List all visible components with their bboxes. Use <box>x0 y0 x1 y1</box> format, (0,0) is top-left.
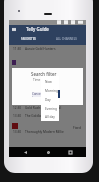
staticText: Cancel <box>32 92 41 97</box>
staticText: 13:30 <box>13 130 22 134</box>
staticText: All day <box>45 115 55 119</box>
button[interactable]: ALL CHANNELS <box>47 33 86 45</box>
button[interactable]: Evening <box>41 104 59 113</box>
button[interactable]: Morning <box>41 86 59 95</box>
staticText: Day <box>45 98 51 102</box>
staticText: FAVORITES <box>21 37 36 41</box>
staticText: Telly Guide <box>26 26 49 32</box>
staticText: Time <box>33 78 41 82</box>
button[interactable]: Time <box>33 78 41 82</box>
staticText: ALL CHANNELS <box>56 37 77 41</box>
button[interactable]: Day <box>41 95 59 104</box>
button[interactable]: Back <box>19 147 31 157</box>
staticText: Fixed <box>73 126 81 130</box>
staticText: Search filter <box>31 71 57 77</box>
button[interactable]: Home <box>42 147 54 157</box>
button[interactable]: Open navigation menu <box>9 25 18 33</box>
button[interactable]: All day <box>41 113 59 121</box>
staticText: Gold Rush: Parker's Trail <box>25 106 62 110</box>
staticText: Now <box>45 80 52 84</box>
button[interactable]: Recent apps <box>64 147 76 157</box>
button[interactable]: Fixed <box>73 126 81 130</box>
button[interactable]: 11:30 <box>9 46 86 51</box>
staticText: Thoroughly Modern Millie <box>25 130 64 134</box>
staticText: 13:30 <box>13 114 22 118</box>
button[interactable]: Cancel <box>32 92 41 97</box>
staticText: Morning <box>45 89 58 93</box>
staticText: 12:30 <box>13 106 22 110</box>
button[interactable]: 12:30 <box>9 105 86 110</box>
staticText: 11:30 <box>13 47 22 51</box>
button[interactable]: 13:30 <box>9 129 86 134</box>
button[interactable]: Now <box>41 77 59 86</box>
staticText: Aussie Gold Hunters <box>25 47 56 51</box>
staticText: The Goldbergs <box>25 114 47 118</box>
button[interactable]: 13:30 <box>9 113 86 118</box>
staticText: Evening <box>45 107 57 111</box>
button[interactable]: FAVORITES <box>9 33 47 45</box>
